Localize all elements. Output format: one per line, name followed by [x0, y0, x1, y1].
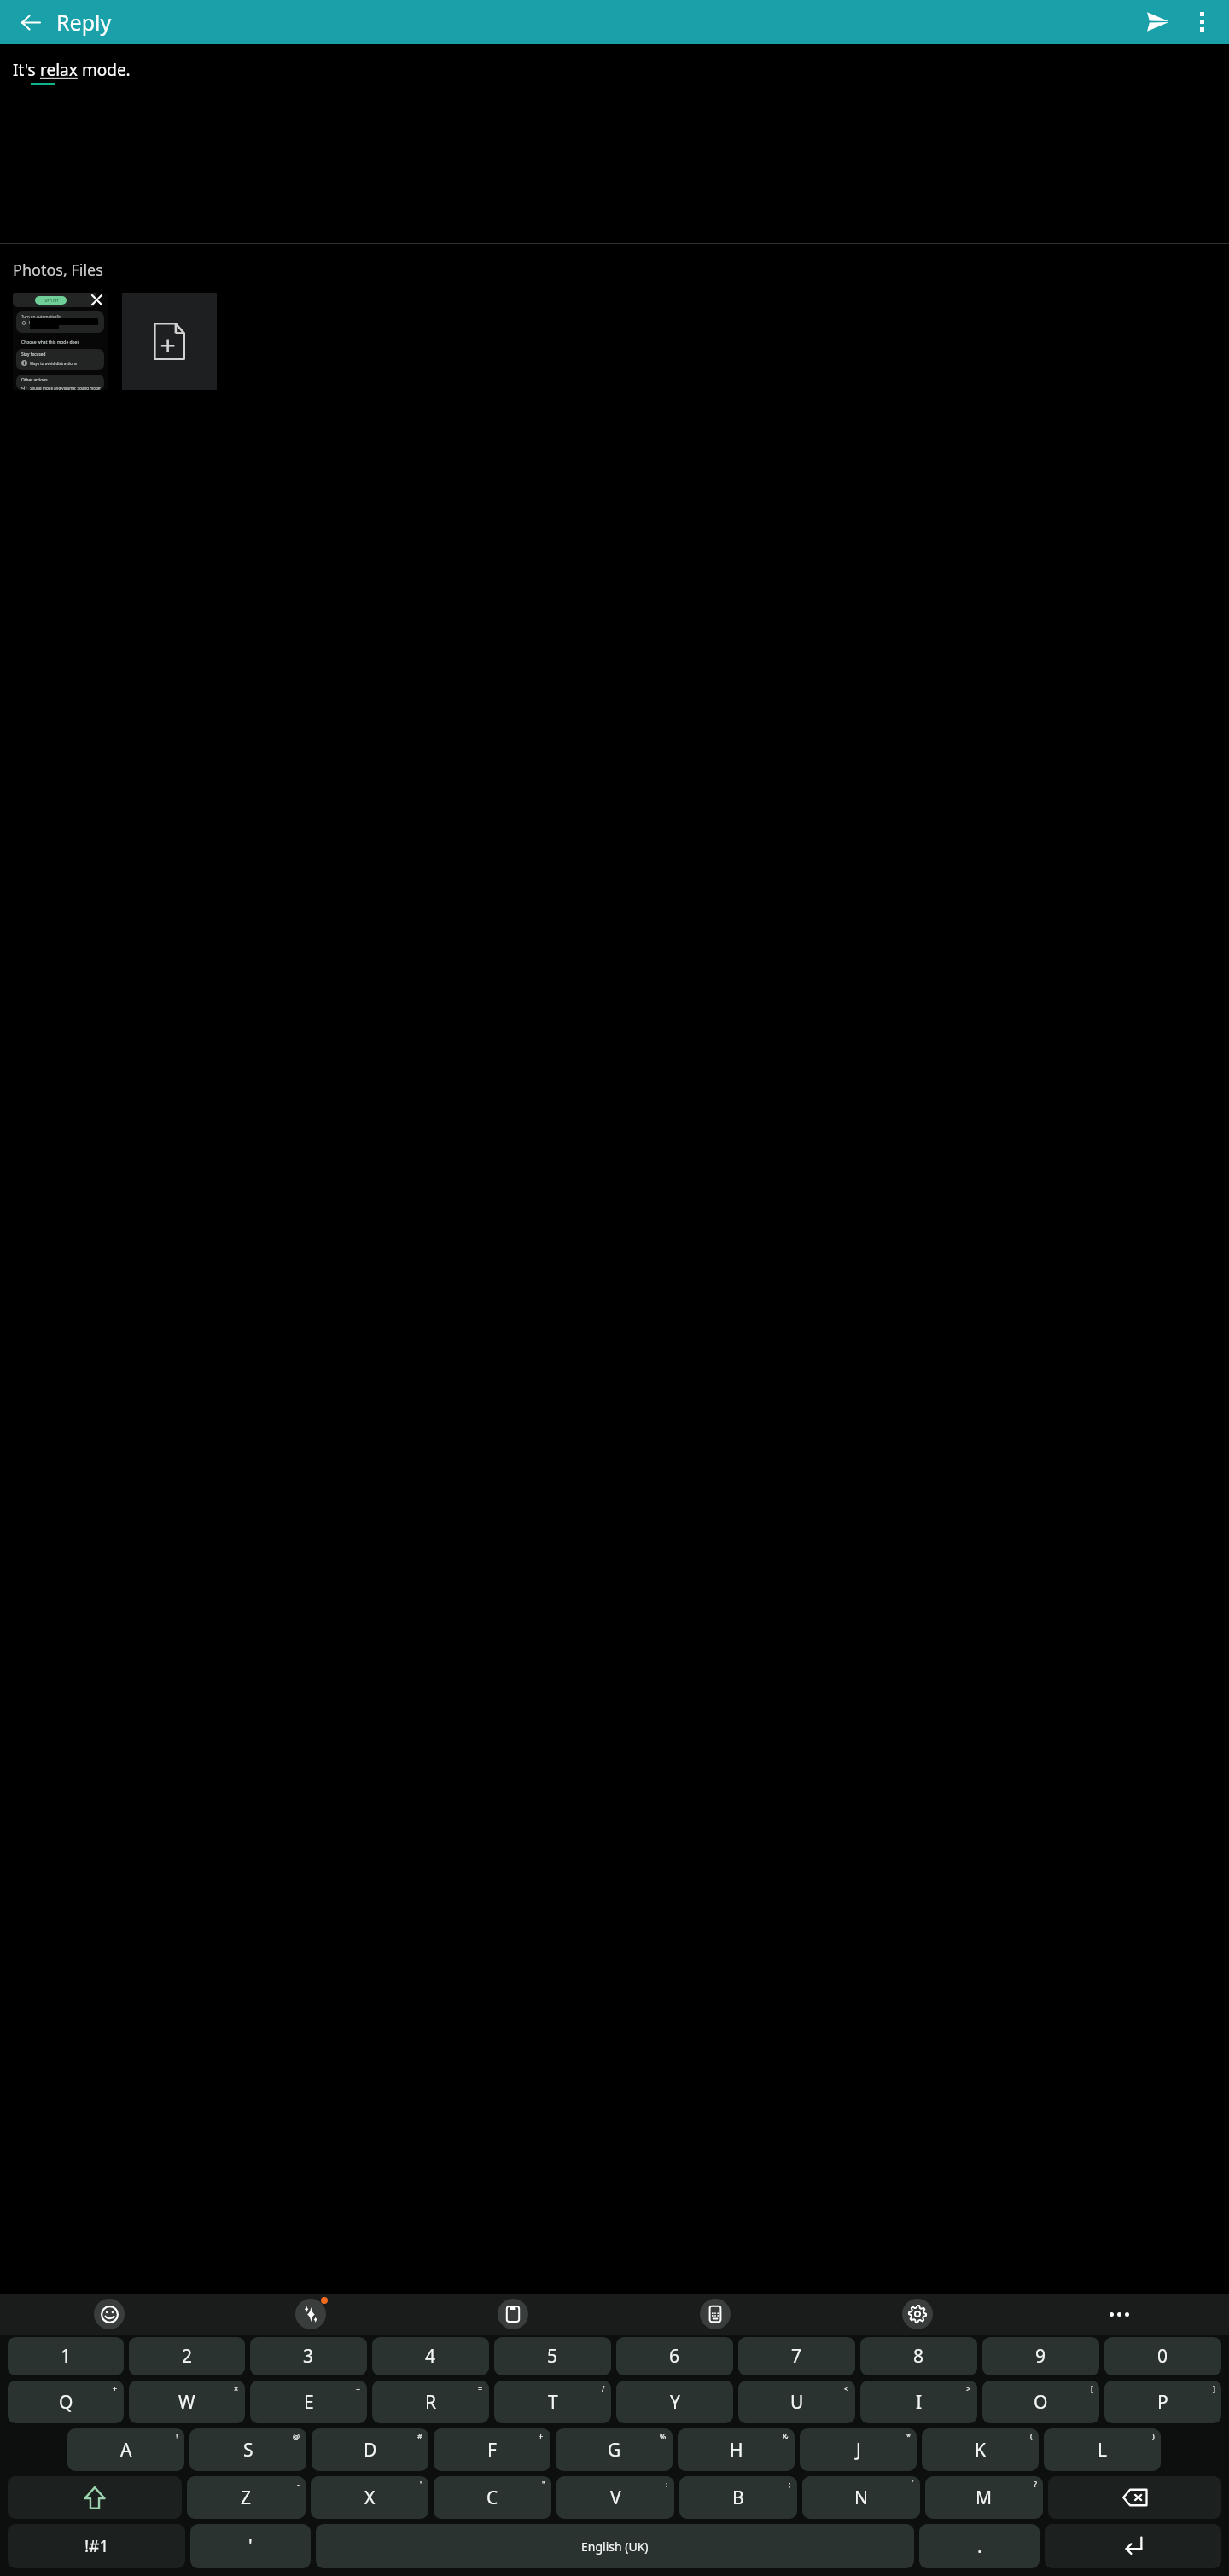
staticText: ;	[789, 2479, 791, 2489]
staticText: 6	[669, 2344, 680, 2369]
staticText: G	[608, 2438, 621, 2463]
button[interactable]: F	[434, 2428, 550, 2471]
button[interactable]: K	[922, 2428, 1039, 2471]
button[interactable]: I	[860, 2381, 977, 2423]
staticText: *	[906, 2431, 911, 2441]
staticText: Photos, Files	[13, 259, 103, 281]
staticText: =	[478, 2383, 483, 2393]
button[interactable]: N	[802, 2476, 920, 2519]
button[interactable]: X	[311, 2476, 428, 2519]
staticText: Z	[241, 2486, 252, 2510]
staticText: ´	[912, 2479, 914, 2489]
staticText: K	[975, 2438, 986, 2463]
button[interactable]: U	[738, 2381, 855, 2423]
button[interactable]: AI suggestions	[295, 2299, 326, 2329]
staticText: F	[487, 2438, 497, 2463]
staticText: J	[856, 2438, 861, 2463]
button[interactable]: G	[556, 2428, 673, 2471]
button[interactable]: S	[189, 2428, 306, 2471]
button[interactable]: 6	[616, 2337, 733, 2375]
staticText: O	[1034, 2390, 1048, 2415]
button[interactable]: B	[679, 2476, 797, 2519]
staticText: 5	[547, 2344, 558, 2369]
staticText: It's	[13, 59, 40, 81]
button[interactable]: A	[67, 2428, 184, 2471]
button[interactable]: 1	[8, 2337, 124, 2375]
staticText: X	[364, 2486, 376, 2510]
staticText: ÷	[356, 2383, 361, 2393]
button[interactable]: 8	[860, 2337, 977, 2375]
button[interactable]: Clipboard	[498, 2299, 528, 2329]
button[interactable]: C	[434, 2476, 551, 2519]
button[interactable]: Keyboard modes	[700, 2299, 731, 2329]
staticText: >	[966, 2383, 971, 2393]
button[interactable]: Turn off	[13, 293, 108, 390]
button[interactable]: More options	[1179, 0, 1224, 44]
staticText: English (UK)	[581, 2538, 649, 2555]
staticText: Turn off	[43, 298, 59, 304]
button[interactable]: Enter	[1045, 2524, 1221, 2568]
button[interactable]: W	[129, 2381, 245, 2423]
staticText: 8	[913, 2344, 924, 2369]
button[interactable]: Add file attachment	[122, 293, 217, 390]
staticText: N	[854, 2486, 868, 2510]
button[interactable]: O	[982, 2381, 1099, 2423]
staticText: Turn on automatically	[21, 314, 61, 319]
staticText: 4	[425, 2344, 436, 2369]
button[interactable]: D	[312, 2428, 428, 2471]
button[interactable]: Backspace	[1048, 2476, 1221, 2519]
button[interactable]: Back	[10, 2, 51, 43]
button[interactable]: English (UK)	[316, 2524, 914, 2568]
staticText: /	[602, 2383, 605, 2393]
staticText: P	[29, 320, 32, 325]
button[interactable]: Settings	[902, 2299, 933, 2329]
button[interactable]: Z	[187, 2476, 306, 2519]
button[interactable]: J	[800, 2428, 917, 2471]
staticText: 9	[1035, 2344, 1046, 2369]
staticText: D	[364, 2438, 377, 2463]
button[interactable]: 2	[129, 2337, 245, 2375]
staticText: mode.	[78, 59, 131, 81]
staticText: U	[790, 2390, 804, 2415]
button[interactable]: Symbols	[8, 2524, 185, 2568]
staticText: !	[176, 2431, 178, 2441]
staticText: Stay focused	[21, 352, 46, 358]
button[interactable]: Send	[1135, 0, 1179, 44]
button[interactable]: 3	[250, 2337, 367, 2375]
button[interactable]: More	[1018, 2294, 1220, 2335]
button[interactable]: .	[919, 2524, 1040, 2568]
staticText: 1	[61, 2344, 72, 2369]
staticText: .	[977, 2534, 982, 2559]
button[interactable]: E	[250, 2381, 367, 2423]
button[interactable]: P	[1104, 2381, 1221, 2423]
staticText: (	[1030, 2431, 1033, 2441]
staticText: "	[542, 2479, 545, 2489]
staticText: C	[486, 2486, 498, 2510]
staticText: V	[610, 2486, 621, 2510]
button[interactable]: R	[372, 2381, 489, 2423]
staticText: M	[976, 2486, 993, 2510]
button[interactable]: L	[1044, 2428, 1161, 2471]
button[interactable]: '	[190, 2524, 311, 2568]
staticText: relax	[40, 59, 78, 81]
button[interactable]: 7	[738, 2337, 855, 2375]
button[interactable]: H	[678, 2428, 795, 2471]
button[interactable]: 9	[982, 2337, 1099, 2375]
staticText: ×	[234, 2383, 239, 2393]
button[interactable]: M	[925, 2476, 1043, 2519]
button[interactable]: V	[556, 2476, 674, 2519]
button[interactable]: 4	[372, 2337, 489, 2375]
button[interactable]: Shift	[8, 2476, 182, 2519]
staticText: !#1	[84, 2535, 109, 2557]
button[interactable]: 0	[1104, 2337, 1221, 2375]
staticText: +	[113, 2383, 118, 2393]
button[interactable]: Emoji	[94, 2299, 125, 2329]
button[interactable]: 5	[494, 2337, 611, 2375]
button[interactable]: Q	[8, 2381, 124, 2423]
staticText: A	[120, 2438, 132, 2463]
staticText: Other actions	[21, 377, 48, 383]
button[interactable]: Y	[616, 2381, 733, 2423]
button[interactable]: T	[494, 2381, 611, 2423]
staticText: P	[1157, 2390, 1168, 2415]
